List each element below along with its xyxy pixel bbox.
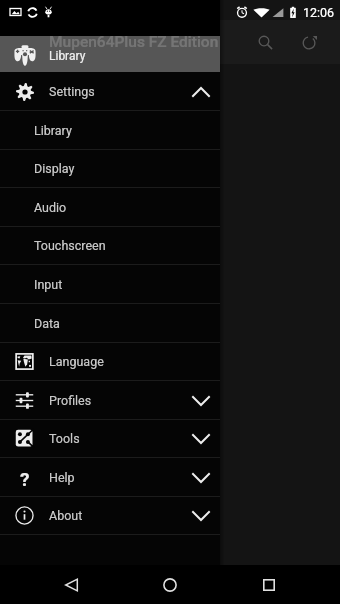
- button[interactable]: Data: [0, 304, 220, 343]
- button[interactable]: Back: [22, 565, 120, 604]
- staticText: Touchscreen: [34, 238, 106, 253]
- staticText: Audio: [34, 200, 67, 215]
- button[interactable]: Audio: [0, 188, 220, 227]
- staticText: Help: [49, 470, 75, 485]
- button[interactable]: Input: [0, 265, 220, 304]
- staticText: About: [49, 508, 83, 523]
- staticText: Settings: [49, 84, 95, 99]
- button[interactable]: ?: [0, 458, 220, 497]
- button[interactable]: Display: [0, 149, 220, 188]
- button[interactable]: Profiles: [0, 381, 220, 420]
- staticText: 12:06: [303, 5, 335, 20]
- staticText: Language: [49, 354, 104, 369]
- staticText: Data: [34, 316, 60, 331]
- staticText: Profiles: [49, 393, 92, 408]
- button[interactable]: Tools: [0, 419, 220, 458]
- button[interactable]: Language: [0, 342, 220, 381]
- button[interactable]: Refresh: [287, 20, 331, 64]
- button[interactable]: Touchscreen: [0, 226, 220, 265]
- button[interactable]: Recents: [220, 565, 318, 604]
- button[interactable]: Settings: [0, 72, 220, 111]
- staticText: Input: [34, 277, 63, 292]
- button[interactable]: Search: [243, 20, 287, 64]
- staticText: Library: [49, 49, 86, 63]
- staticText: Display: [34, 161, 75, 176]
- staticText: Library: [34, 123, 72, 138]
- staticText: Tools: [49, 431, 80, 446]
- button[interactable]: Mupen64Plus FZ Edition: [0, 36, 220, 72]
- staticText: ?: [20, 468, 30, 487]
- button[interactable]: Home: [120, 565, 220, 604]
- button[interactable]: About: [0, 496, 220, 535]
- staticText: Mupen64Plus FZ Edition: [49, 33, 219, 51]
- button[interactable]: Library: [0, 111, 220, 150]
